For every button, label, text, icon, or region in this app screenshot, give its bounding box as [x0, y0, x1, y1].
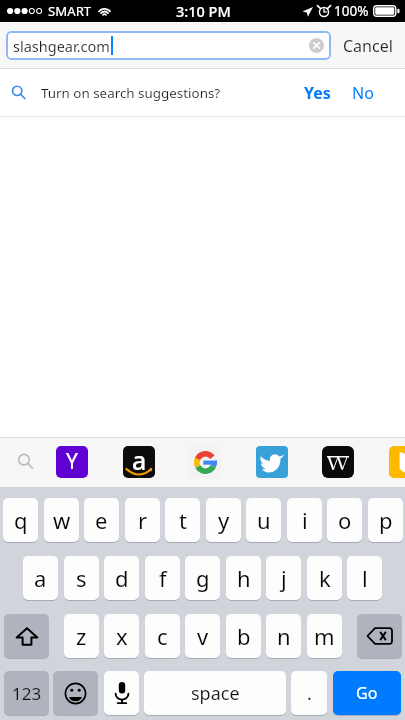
staticText: w [53, 505, 71, 535]
button[interactable]: Search [17, 453, 34, 470]
button[interactable]: Backspace [357, 614, 402, 658]
button[interactable]: y [206, 498, 241, 542]
button[interactable]: Cancel [331, 35, 405, 57]
staticText: 100% [334, 2, 369, 20]
button[interactable]: n [266, 614, 301, 658]
staticText: m [314, 621, 335, 651]
staticText: p [379, 505, 393, 535]
button[interactable]: j [266, 556, 301, 600]
staticText: space [191, 681, 240, 706]
button[interactable]: No [345, 76, 381, 110]
staticText: q [14, 505, 28, 535]
button[interactable]: space [144, 671, 286, 715]
staticText: o [338, 505, 352, 535]
staticText: a [132, 446, 147, 475]
button[interactable]: v [185, 614, 220, 658]
staticText: d [115, 563, 129, 593]
button[interactable]: . [291, 671, 327, 715]
button[interactable]: u [246, 498, 281, 542]
button[interactable]: f [145, 556, 180, 600]
button[interactable]: s [64, 556, 99, 600]
staticText: g [196, 563, 210, 593]
button[interactable]: p [368, 498, 403, 542]
button[interactable]: d [104, 556, 139, 600]
staticText: e [95, 505, 108, 535]
button[interactable]: z [64, 614, 99, 658]
button[interactable]: x [104, 614, 139, 658]
staticText: No [352, 82, 374, 104]
button[interactable]: m [307, 614, 342, 658]
button[interactable]: a [23, 556, 58, 600]
button[interactable]: g [185, 556, 220, 600]
staticText: 123 [12, 682, 42, 705]
button[interactable]: Bing [389, 446, 405, 478]
staticText: i [302, 505, 308, 535]
staticText: Y [66, 447, 78, 476]
staticText: z [76, 621, 87, 651]
staticText: k [319, 563, 331, 593]
button[interactable]: Yahoo [56, 446, 88, 478]
button[interactable]: Clear text [309, 38, 324, 53]
staticText: s [76, 563, 87, 593]
button[interactable]: h [226, 556, 261, 600]
button[interactable]: Dictation [104, 671, 139, 715]
staticText: slashgear.com [13, 36, 110, 56]
button[interactable]: q [3, 498, 38, 542]
staticText: r [138, 505, 148, 535]
staticText: 3:10 PM [176, 1, 231, 21]
button[interactable]: Amazon [123, 446, 155, 478]
staticText: Go [356, 682, 378, 704]
staticText: x [116, 621, 128, 651]
staticText: . [307, 681, 312, 706]
staticText: f [159, 563, 167, 593]
staticText: l [362, 563, 368, 593]
button[interactable]: Numbers [4, 671, 49, 715]
staticText: b [237, 621, 251, 651]
button[interactable]: Emoji [53, 671, 98, 715]
staticText: v [197, 621, 209, 651]
staticText: Yes [304, 82, 331, 104]
button[interactable]: slashgear.com [6, 31, 331, 60]
button[interactable]: b [226, 614, 261, 658]
staticText: j [281, 563, 287, 593]
button[interactable]: i [287, 498, 322, 542]
staticText: u [257, 505, 271, 535]
button[interactable]: Twitter [256, 446, 288, 478]
staticText: Turn on search suggestions? [41, 84, 221, 102]
button[interactable]: k [307, 556, 342, 600]
staticText: Cancel [343, 35, 393, 57]
button[interactable]: o [327, 498, 362, 542]
staticText: a [34, 563, 47, 593]
staticText: n [277, 621, 291, 651]
button[interactable]: r [125, 498, 160, 542]
button[interactable]: l [347, 556, 382, 600]
button[interactable]: Google [189, 446, 221, 478]
button[interactable]: c [145, 614, 180, 658]
button[interactable]: Yes [297, 76, 338, 110]
button[interactable]: Go [333, 671, 401, 715]
staticText: c [157, 621, 168, 651]
staticText: SMART [48, 2, 92, 20]
staticText: t [179, 505, 187, 535]
button[interactable]: Turn on search suggestions? [0, 69, 405, 116]
staticText: h [237, 563, 251, 593]
staticText: y [218, 505, 230, 535]
button[interactable]: w [44, 498, 79, 542]
button[interactable]: e [84, 498, 119, 542]
button[interactable]: t [165, 498, 200, 542]
button[interactable]: Wikipedia [322, 446, 354, 478]
button[interactable]: Shift [4, 614, 49, 658]
